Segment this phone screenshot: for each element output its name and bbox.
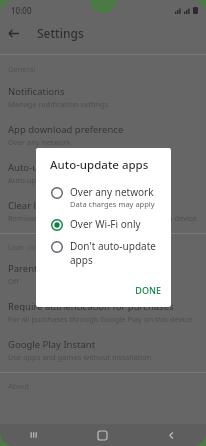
staticText: User controls <box>8 242 55 252</box>
staticText: For all purchases through Google Play on… <box>8 314 193 324</box>
staticText: Over any network <box>70 185 154 199</box>
staticText: Notifications <box>8 85 65 98</box>
button[interactable]: Google Play Instant <box>0 324 206 362</box>
button[interactable]: Over any network <box>36 181 171 213</box>
staticText: About <box>8 381 30 391</box>
button[interactable]: Recent apps <box>0 424 68 446</box>
button[interactable]: Parental controls <box>0 252 206 286</box>
button[interactable]: Clear local search history <box>0 185 206 223</box>
button[interactable]: Require authentication for purchases <box>0 286 206 324</box>
staticText: Auto-update apps <box>8 161 88 174</box>
staticText: Over any network <box>8 137 71 147</box>
staticText: Manage notification settings <box>8 99 109 109</box>
button[interactable]: Over Wi-Fi only <box>36 213 171 235</box>
button[interactable]: App download preference <box>0 109 206 147</box>
staticText: Clear local search history <box>8 199 120 212</box>
staticText: Data charges may apply <box>70 199 155 209</box>
button[interactable]: DONE <box>125 281 171 299</box>
button[interactable]: Home <box>68 424 137 446</box>
staticText: Parental controls <box>8 262 84 275</box>
staticText: DONE <box>135 284 161 296</box>
staticText: Settings <box>37 25 84 41</box>
staticText: Auto-update apps over Wi-Fi only <box>8 175 125 185</box>
staticText: Require authentication for purchases <box>8 300 174 313</box>
staticText: Off <box>8 276 20 286</box>
staticText: 10:00 <box>11 5 32 16</box>
button[interactable]: Notifications <box>0 74 206 109</box>
button[interactable]: Auto-update apps <box>0 147 206 185</box>
staticText: Don't auto-update apps <box>70 239 157 267</box>
staticText: App download preference <box>8 123 124 136</box>
button[interactable]: Don't auto-update apps <box>36 235 171 271</box>
staticText: Removes searches you have performed on t… <box>8 213 197 223</box>
button[interactable]: Back <box>137 424 206 446</box>
staticText: Google Play Instant <box>8 338 96 351</box>
staticText: General <box>8 64 36 74</box>
button[interactable]: Back <box>0 20 26 46</box>
staticText: Auto-update apps <box>50 157 149 173</box>
staticText: Use apps and games without installation <box>8 352 152 362</box>
staticText: Over Wi-Fi only <box>70 217 141 231</box>
